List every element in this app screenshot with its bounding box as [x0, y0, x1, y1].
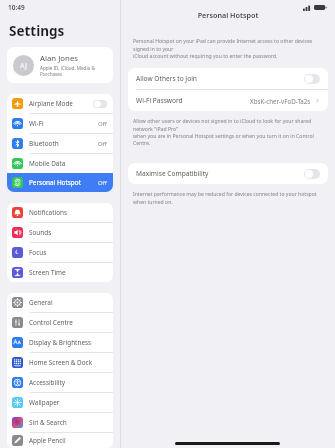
staticText: Mobile Data [29, 159, 107, 168]
staticText: Focus [29, 248, 107, 257]
button[interactable]: Toggle [304, 74, 320, 84]
staticText: Bluetooth [29, 139, 98, 148]
staticText: General [29, 298, 107, 307]
staticText: Maximise Compatibility [136, 169, 304, 178]
staticText: Personal Hotspot on your iPad can provid… [133, 38, 323, 59]
button[interactable]: Maximise Compatibility [128, 163, 328, 184]
button[interactable]: Sounds [7, 223, 113, 242]
staticText: Settings [9, 22, 65, 40]
staticText: Internet performance may be reduced for … [133, 191, 323, 205]
button[interactable]: Bluetooth [7, 134, 113, 153]
staticText: Control Centre [29, 318, 107, 327]
button[interactable]: Apple Pencil [7, 433, 113, 448]
button[interactable]: Airplane Mode [7, 94, 113, 113]
staticText: Accessibility [29, 378, 107, 387]
staticText: Personal Hotspot [29, 178, 98, 187]
staticText: Notifications [29, 208, 107, 217]
staticText: Apple Pencil [29, 436, 107, 445]
staticText: Screen Time [29, 268, 107, 277]
button[interactable]: Toggle [304, 169, 320, 179]
button[interactable]: Screen Time [7, 263, 113, 282]
staticText: Personal Hotspot [121, 10, 335, 20]
staticText: Wi-Fi [29, 119, 98, 128]
button[interactable]: Siri & Search [7, 413, 113, 432]
button[interactable]: Personal Hotspot [7, 173, 113, 192]
button[interactable]: General [7, 293, 113, 312]
button[interactable]: Notifications [7, 203, 113, 222]
button[interactable]: Accessibility [7, 373, 113, 392]
staticText: Wallpaper [29, 398, 107, 407]
button[interactable]: Home Screen & Dock [7, 353, 113, 372]
button[interactable]: Display & Brightness [7, 333, 113, 352]
staticText: Display & Brightness [29, 338, 107, 347]
staticText: Allow Others to Join [136, 74, 304, 83]
button[interactable]: Allow Others to Join [128, 68, 328, 89]
staticText: 10:49 [8, 3, 25, 12]
staticText: Siri & Search [29, 418, 107, 427]
staticText: Alan Jones [40, 53, 79, 64]
staticText: Off [98, 140, 107, 148]
button[interactable]: Wi-Fi Password [128, 90, 328, 111]
staticText: Apple ID, iCloud, Media & Purchases [40, 65, 107, 77]
staticText: Wi-Fi Password [136, 96, 250, 105]
staticText: Off [98, 179, 107, 187]
staticText: Sounds [29, 228, 107, 237]
button[interactable]: Mobile Data [7, 154, 113, 173]
staticText: Home Screen & Dock [29, 358, 107, 367]
button[interactable]: AJ [7, 47, 113, 83]
staticText: Airplane Mode [29, 99, 93, 108]
staticText: Allow other users or devices not signed … [133, 118, 323, 146]
staticText: XbsK-cher-vFoD-Ta2s [250, 97, 311, 105]
button[interactable]: Wallpaper [7, 393, 113, 412]
button[interactable]: Wi-Fi [7, 114, 113, 133]
staticText: AJ [20, 61, 27, 71]
button[interactable]: Control Centre [7, 313, 113, 332]
staticText: Off [98, 120, 107, 128]
button[interactable]: Toggle [93, 100, 107, 108]
button[interactable]: Focus [7, 243, 113, 262]
